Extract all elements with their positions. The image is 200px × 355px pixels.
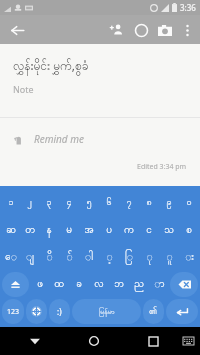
button[interactable]: ိ [39,244,59,271]
button[interactable]: င [139,216,159,244]
button[interactable]: ါ [79,244,99,271]
staticText: လ [94,277,104,292]
button[interactable]: လ [89,271,109,298]
button[interactable]: More options [177,20,197,40]
staticText: Remind me [34,132,84,146]
button[interactable]: ၅ [79,188,99,216]
button[interactable]: တ [20,216,39,244]
button[interactable]: Back [6,19,28,41]
button[interactable]: ည [129,271,149,298]
staticText: ့ [106,250,113,265]
staticText: က [124,223,134,238]
button[interactable]: Add image [153,18,177,42]
staticText: း [185,250,194,265]
button[interactable]: Change color [129,18,153,42]
button[interactable]: Emoji [49,299,70,324]
staticText: ၁ [8,196,14,209]
staticText: 123 [7,307,20,317]
staticText: ၏ [149,305,158,318]
staticText: ည [134,277,144,292]
button[interactable]: ျ [20,244,39,271]
staticText: ာ [154,277,165,292]
button[interactable]: ် [59,244,79,271]
staticText: ဆ [6,223,16,238]
button[interactable]: Space [72,299,141,324]
staticText: ထ [54,277,64,292]
staticText: ဘ [114,277,124,292]
staticText: ါ [85,250,93,265]
button[interactable]: ူ [159,244,179,271]
button[interactable]: ၃ [39,188,59,216]
staticText: ု [146,250,153,265]
button[interactable]: ပ [99,216,119,244]
staticText: စ [186,223,192,238]
button[interactable]: Remind me [0,128,200,150]
staticText: ေ [5,250,17,265]
button[interactable]: ့ [99,244,119,271]
staticText: လွှန်းမိုင်း မွှက်,စွခံ [13,57,89,76]
staticText: တ [25,223,35,238]
button[interactable]: Home [81,328,107,354]
staticText: ၃ [46,196,52,209]
staticText: ြ [125,250,133,265]
staticText: ၈ [146,196,152,209]
button[interactable]: ဆ [1,216,20,244]
button[interactable]: ၈ [139,188,159,216]
staticText: ် [66,250,73,265]
button[interactable]: ၂ [20,188,39,216]
button[interactable]: န [39,216,59,244]
button[interactable]: ဘ [109,271,129,298]
staticText: :) [57,306,62,317]
button[interactable]: Shift [2,272,29,297]
button[interactable]: Numbers [2,299,24,324]
button[interactable]: ု [139,244,159,271]
staticText: ၇ [126,196,132,209]
button[interactable]: အ [79,216,99,244]
staticText: ခ [76,277,82,292]
staticText: ဖ [37,277,43,292]
button[interactable]: က [119,216,139,244]
button[interactable]: Period [143,299,164,324]
button[interactable]: Enter [166,299,198,324]
staticText: မြန်မာ [99,307,115,317]
staticText: သ [164,223,174,238]
staticText: မ [66,223,72,238]
button[interactable]: ခ [69,271,89,298]
staticText: ၂ [27,196,32,209]
staticText: ိ [46,250,53,265]
button[interactable]: ၄ [59,188,79,216]
button[interactable]: စ [179,216,199,244]
staticText: င [146,223,152,238]
button[interactable]: ထ [49,271,69,298]
button[interactable]: Add collaborator [105,18,129,42]
staticText: အ [84,223,94,238]
button[interactable]: ၀ [179,188,199,216]
staticText: ၀ [186,196,192,209]
staticText: ၆ [106,196,112,209]
button[interactable]: ၇ [119,188,139,216]
button[interactable]: ြ [119,244,139,271]
staticText: ၅ [86,196,92,209]
button[interactable]: ာ [149,271,169,298]
staticText: ျ [26,250,34,265]
staticText: ူ [166,250,173,265]
button[interactable]: ၆ [99,188,119,216]
button[interactable]: Recent apps [140,328,166,354]
button[interactable]: Change language [26,299,47,324]
staticText: Edited 3:34 pm [137,162,187,172]
button[interactable]: Backspace [170,272,198,297]
staticText: န [46,223,52,238]
staticText: ၉ [166,196,172,209]
button[interactable]: Hide keyboard [22,328,48,354]
button[interactable]: ဖ [30,271,49,298]
staticText: 3:36 [180,2,196,13]
button[interactable]: မ [59,216,79,244]
button[interactable]: Keyboard input method [178,331,198,351]
button[interactable]: ၁ [1,188,20,216]
staticText: ၄ [66,196,72,209]
button[interactable]: ၉ [159,188,179,216]
button[interactable]: ေ [1,244,20,271]
button[interactable]: သ [159,216,179,244]
button[interactable]: း [179,244,199,271]
staticText: Note [13,83,34,95]
